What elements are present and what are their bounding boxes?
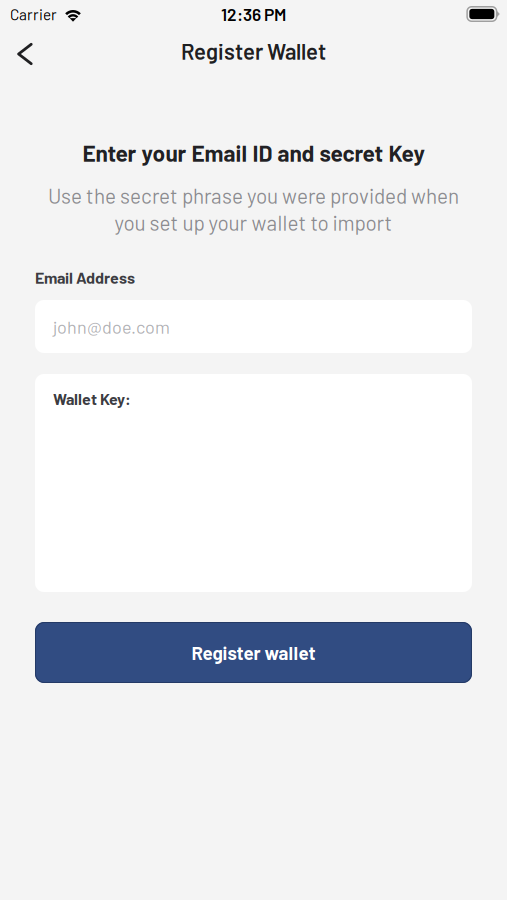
staticText: Carrier xyxy=(10,5,57,23)
staticText: Register wallet xyxy=(191,641,315,664)
staticText: Enter your Email ID and secret Key xyxy=(82,139,424,166)
staticText: 12:36 PM xyxy=(221,4,286,24)
staticText: Wallet Key: xyxy=(53,389,131,408)
staticText: john@doe.com xyxy=(53,316,170,337)
staticText: Register Wallet xyxy=(181,38,326,64)
staticText: you set up your wallet to import xyxy=(114,210,392,235)
staticText: Email Address xyxy=(35,268,135,287)
button[interactable]: Register wallet xyxy=(35,622,472,683)
button[interactable]: Back xyxy=(0,32,49,76)
staticText: Use the secret phrase you were provided … xyxy=(48,183,459,208)
